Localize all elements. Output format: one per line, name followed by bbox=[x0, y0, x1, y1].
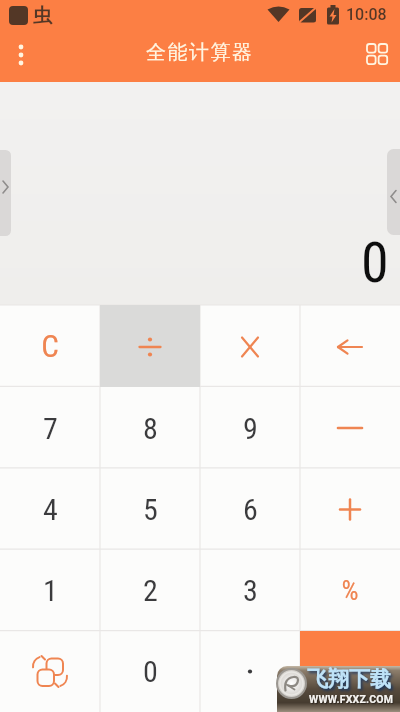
button[interactable]: % bbox=[300, 550, 400, 631]
staticText: 飞翔下载 bbox=[307, 666, 391, 692]
button[interactable]: 1 bbox=[0, 550, 100, 631]
button[interactable]: C bbox=[0, 305, 100, 387]
staticText: 全能计算器 bbox=[146, 40, 254, 65]
staticText: C bbox=[41, 328, 59, 364]
button[interactable] bbox=[200, 631, 300, 712]
staticText: 4 bbox=[43, 492, 58, 527]
staticText: 6 bbox=[243, 492, 258, 527]
staticText: 3 bbox=[243, 573, 258, 608]
button[interactable] bbox=[300, 305, 400, 387]
button[interactable]: 4 bbox=[0, 469, 100, 550]
staticText: 0 bbox=[143, 654, 158, 689]
button[interactable]: 7 bbox=[0, 387, 100, 469]
button[interactable] bbox=[300, 631, 400, 712]
staticText: 8 bbox=[143, 411, 158, 446]
staticText: 7 bbox=[43, 411, 58, 446]
button[interactable]: 3 bbox=[200, 550, 300, 631]
button[interactable] bbox=[387, 149, 400, 235]
staticText: 2 bbox=[143, 573, 158, 608]
button[interactable]: 6 bbox=[200, 469, 300, 550]
button[interactable] bbox=[0, 32, 48, 82]
button[interactable] bbox=[300, 469, 400, 550]
button[interactable] bbox=[0, 150, 11, 236]
staticText: 虫 bbox=[33, 4, 52, 28]
button[interactable]: 2 bbox=[100, 550, 200, 631]
button[interactable] bbox=[352, 32, 400, 82]
button[interactable] bbox=[200, 305, 300, 387]
staticText: 1 bbox=[43, 573, 58, 608]
button[interactable]: 5 bbox=[100, 469, 200, 550]
staticText: WWW.FXXZ.COM bbox=[309, 693, 394, 705]
staticText: 10:08 bbox=[346, 5, 387, 24]
button[interactable] bbox=[300, 387, 400, 469]
staticText: 9 bbox=[243, 411, 258, 446]
button[interactable]: 9 bbox=[200, 387, 300, 469]
button[interactable] bbox=[0, 631, 100, 712]
button[interactable] bbox=[100, 305, 200, 387]
staticText: 0 bbox=[361, 230, 389, 296]
button[interactable]: 0 bbox=[100, 631, 200, 712]
button[interactable]: 8 bbox=[100, 387, 200, 469]
staticText: 5 bbox=[143, 492, 158, 527]
staticText: % bbox=[341, 575, 359, 607]
